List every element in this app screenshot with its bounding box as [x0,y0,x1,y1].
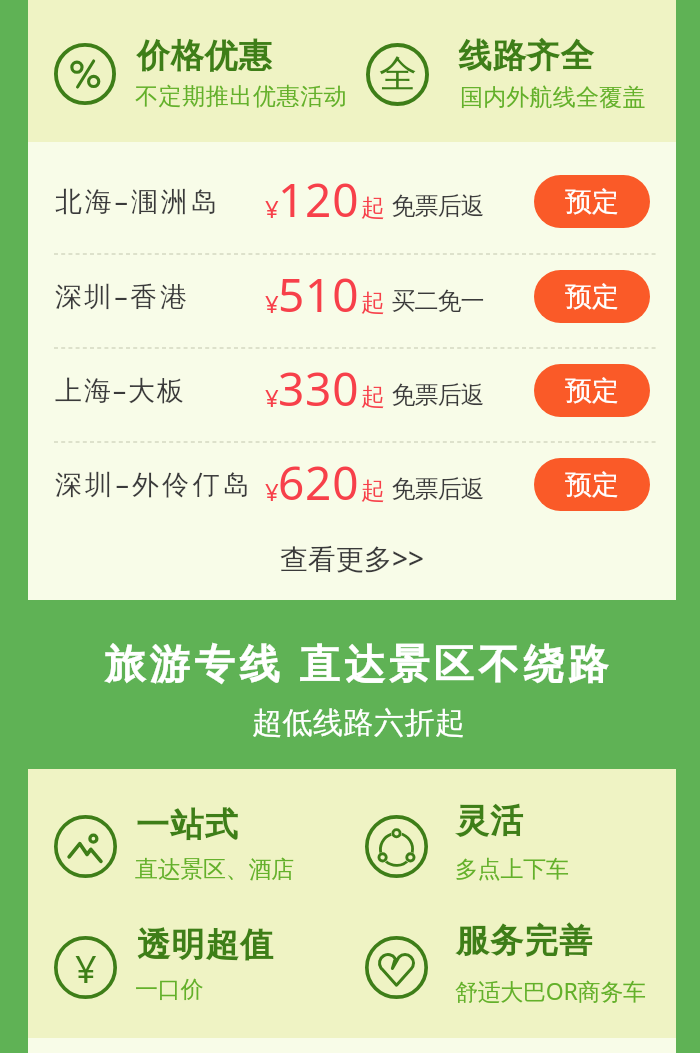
staticText: 北海–涠洲岛 [55,182,221,219]
staticText: 价格优惠 [136,35,272,77]
staticText: 直达景区、酒店 [135,855,294,884]
staticText: 预定 [565,185,619,219]
button[interactable]: 预定 [534,364,650,417]
button[interactable]: 预定 [534,270,650,323]
staticText: ¥ [265,381,279,414]
staticText: 不定期推出优惠活动 [135,82,348,111]
staticText: 透明超值 [136,924,274,966]
staticText: 免票后返 [392,191,484,221]
button[interactable] [0,352,700,447]
staticText: 预定 [565,374,619,408]
staticText: 免票后返 [392,380,484,410]
staticText: ¥ [265,287,279,320]
staticText: 预定 [565,468,619,502]
button[interactable] [0,258,700,353]
staticText: 起 [361,382,385,412]
staticText: 预定 [565,280,619,314]
button[interactable] [54,804,314,886]
staticText: 620 [278,451,360,514]
staticText: ¥ [265,475,279,508]
staticText: 旅游专线 直达景区不绕路 [105,635,613,690]
staticText: 查看更多>> [280,539,425,577]
other: Service [365,936,428,999]
button[interactable]: 预定 [534,175,650,228]
button[interactable] [366,35,626,114]
other: Flexible [365,815,428,878]
staticText: 起 [361,288,385,318]
staticText: ¥ [265,192,279,225]
other: Price [54,936,117,999]
staticText: 起 [361,193,385,223]
staticText: 120 [278,168,360,231]
staticText: 330 [278,357,360,420]
button[interactable] [0,163,700,258]
staticText: 国内外航线全覆盖 [460,83,646,112]
button[interactable] [54,924,314,1006]
button[interactable] [365,800,625,886]
staticText: 灵活 [455,800,524,842]
other: All routes [366,43,429,106]
staticText: 舒适大巴OR商务车 [455,975,646,1006]
staticText: 服务完善 [455,920,593,962]
staticText: 510 [278,263,360,326]
staticText: ¥ [75,942,97,994]
other: One stop [54,815,117,878]
button[interactable] [54,35,314,113]
staticText: 线路齐全 [458,35,594,77]
staticText: 一站式 [136,804,240,846]
staticText: 买二免一 [392,286,484,316]
staticText: 深圳–外伶仃岛 [55,465,253,502]
button[interactable]: 查看更多>> [266,532,439,584]
button[interactable] [0,446,700,541]
staticText: 多点上下车 [455,855,569,884]
staticText: 上海–大板 [55,371,186,408]
staticText: 免票后返 [392,474,484,504]
button[interactable] [365,920,625,1006]
other: Discount [54,43,116,105]
button[interactable]: 预定 [534,458,650,511]
staticText: 超低线路六折起 [252,704,466,742]
staticText: 深圳–香港 [55,277,190,314]
staticText: 一口价 [135,975,204,1004]
staticText: 起 [361,476,385,506]
staticText: 全 [379,50,417,98]
